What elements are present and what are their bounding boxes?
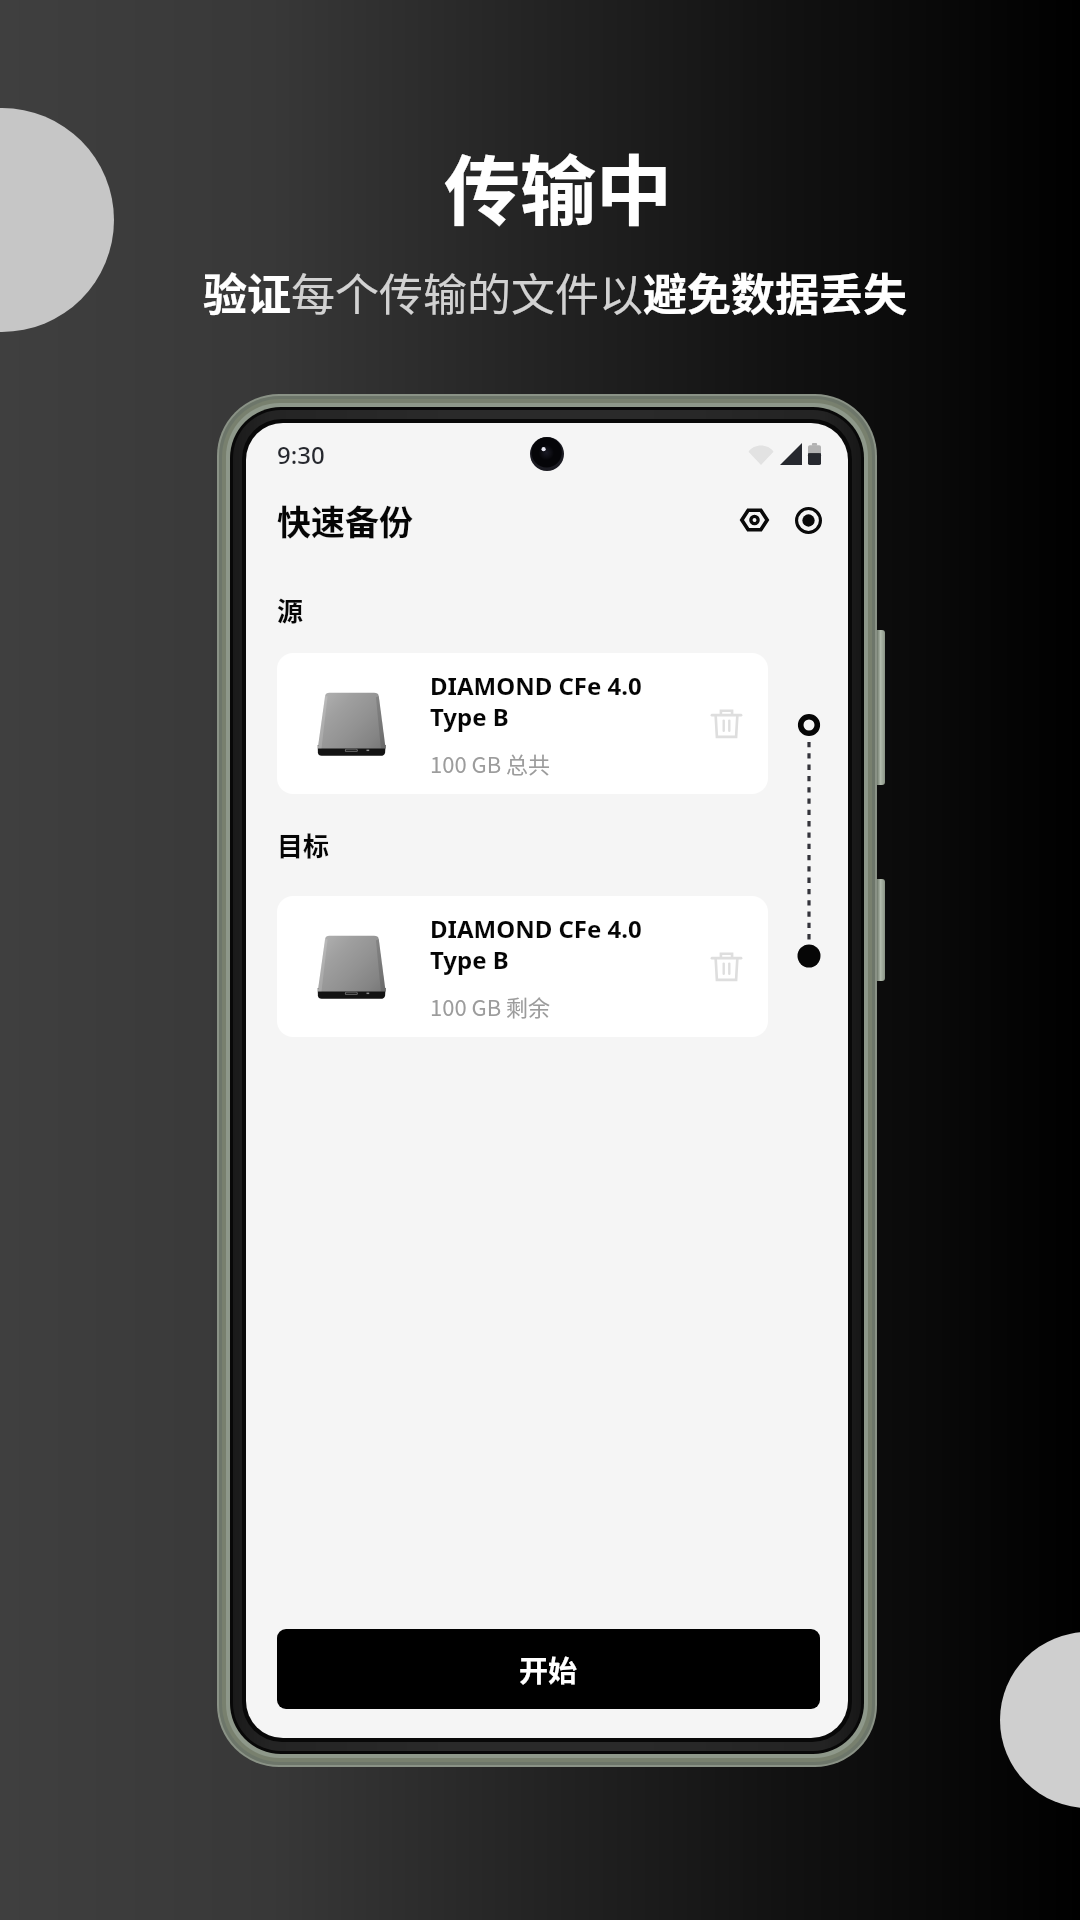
staticText: 传输中	[444, 131, 672, 241]
staticText: 目标	[277, 826, 330, 864]
staticText: DIAMOND CFe 4.0 Type B	[430, 912, 642, 976]
staticText: 9:30	[277, 438, 325, 471]
button[interactable]: DIAMOND CFe 4.0 Type B	[277, 896, 768, 1037]
button[interactable]: DIAMOND CFe 4.0 Type B	[277, 653, 768, 794]
button[interactable]: Delete	[700, 698, 752, 750]
staticText: 源	[277, 591, 304, 629]
button[interactable]: Settings	[732, 498, 776, 542]
staticText: 验证每个传输的文件以避免数据丢失	[203, 260, 907, 324]
staticText: 100 GB 总共	[430, 747, 551, 779]
staticText: 100 GB 剩余	[430, 990, 551, 1022]
staticText: 开始	[519, 1648, 578, 1690]
staticText: DIAMOND CFe 4.0 Type B	[430, 669, 642, 733]
button[interactable]: Record	[786, 498, 830, 542]
staticText: 快速备份	[277, 496, 413, 545]
button[interactable]: 开始	[277, 1629, 820, 1709]
button[interactable]: Delete	[700, 941, 752, 993]
